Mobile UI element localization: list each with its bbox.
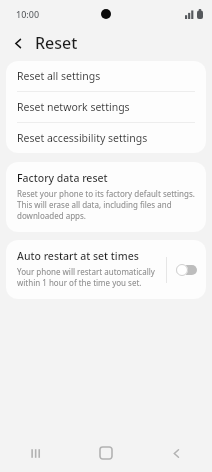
button[interactable]: Reset all settings <box>6 61 206 91</box>
staticText: Auto restart at set times <box>17 249 139 263</box>
button[interactable]: Factory data reset <box>6 162 206 232</box>
button[interactable]: Auto restart at set times toggle <box>167 252 206 288</box>
button[interactable]: Back <box>7 32 29 54</box>
staticText: Reset your phone to its factory default … <box>17 188 195 221</box>
staticText: 10:00 <box>16 8 40 20</box>
button[interactable]: Reset accessibility settings <box>6 123 206 153</box>
staticText: Reset network settings <box>17 100 130 114</box>
button[interactable]: Back <box>141 434 212 472</box>
button[interactable]: Home <box>70 434 141 472</box>
staticText: Reset accessibility settings <box>17 131 148 145</box>
staticText: Reset <box>35 32 78 54</box>
staticText: Your phone will restart automatically wi… <box>17 266 160 288</box>
button[interactable]: Auto restart at set times <box>6 240 166 299</box>
button[interactable]: Reset network settings <box>6 92 206 122</box>
button[interactable]: Recents <box>0 434 70 472</box>
staticText: Factory data reset <box>17 171 108 185</box>
staticText: Reset all settings <box>17 69 101 83</box>
